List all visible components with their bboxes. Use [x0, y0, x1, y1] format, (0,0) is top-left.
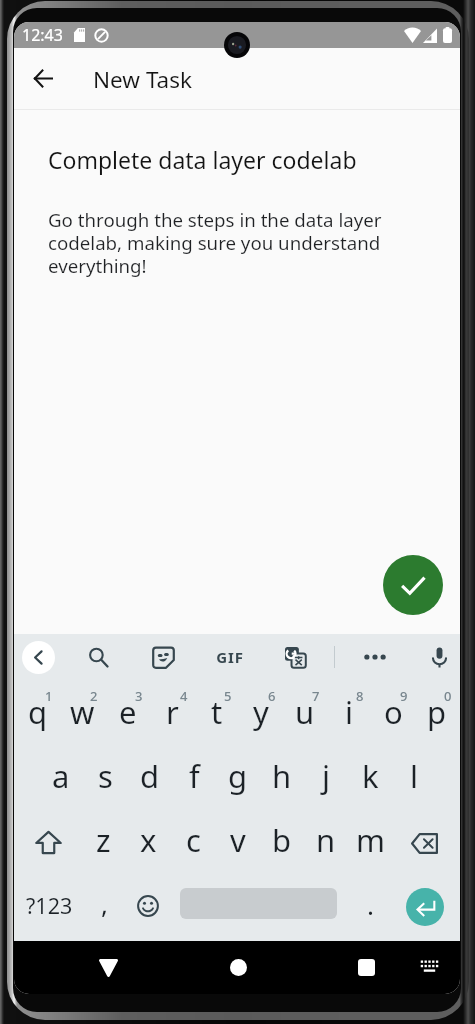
- staticText: 6: [268, 687, 276, 705]
- staticText: 1: [45, 687, 53, 705]
- staticText: o: [384, 691, 403, 733]
- button[interactable]: 8: [327, 676, 371, 740]
- staticText: .: [367, 887, 374, 922]
- button[interactable]: v: [216, 810, 260, 870]
- staticText: 7: [312, 687, 320, 705]
- button[interactable]: Navigate up: [21, 56, 65, 100]
- button[interactable]: n: [304, 810, 348, 870]
- button[interactable]: More options: [361, 643, 389, 671]
- button[interactable]: 4: [150, 676, 195, 740]
- staticText: n: [316, 819, 336, 861]
- staticText: ,: [101, 886, 108, 921]
- button[interactable]: z: [81, 810, 126, 870]
- button[interactable]: GIF: [212, 647, 248, 667]
- button[interactable]: c: [171, 810, 216, 870]
- button[interactable]: d: [128, 740, 172, 804]
- staticText: d: [140, 755, 160, 797]
- button[interactable]: m: [348, 810, 392, 870]
- button[interactable]: b: [260, 810, 304, 870]
- button[interactable]: k: [348, 740, 392, 804]
- button[interactable]: 2: [60, 676, 105, 740]
- button[interactable]: f: [172, 740, 216, 804]
- button[interactable]: 9: [371, 676, 415, 740]
- staticText: Complete data layer codelab: [48, 144, 357, 175]
- button[interactable]: 5: [195, 676, 239, 740]
- staticText: 5: [224, 687, 232, 705]
- button[interactable]: Translate: [281, 643, 309, 671]
- staticText: c: [186, 819, 201, 861]
- button[interactable]: Recent apps: [342, 943, 390, 991]
- button[interactable]: 0: [415, 676, 459, 740]
- staticText: q: [28, 691, 48, 733]
- staticText: 12:43: [22, 24, 63, 46]
- staticText: h: [272, 755, 292, 797]
- button[interactable]: Home: [214, 943, 262, 991]
- staticText: s: [98, 755, 113, 797]
- staticText: w: [70, 691, 95, 733]
- staticText: k: [362, 755, 379, 797]
- button[interactable]: l: [392, 740, 436, 804]
- button[interactable]: Backspace: [402, 813, 446, 873]
- button[interactable]: a: [38, 740, 83, 804]
- button[interactable]: x: [126, 810, 171, 870]
- staticText: 2: [90, 687, 98, 705]
- staticText: z: [96, 819, 111, 861]
- button[interactable]: ,: [84, 877, 124, 937]
- button[interactable]: Close toolbar: [22, 641, 55, 674]
- staticText: x: [140, 819, 157, 861]
- staticText: i: [345, 691, 353, 733]
- button[interactable]: Save task: [383, 555, 443, 615]
- staticText: Go through the steps in the data layer c…: [48, 207, 436, 279]
- staticText: l: [410, 755, 418, 797]
- staticText: j: [322, 755, 330, 797]
- staticText: 8: [356, 687, 364, 705]
- button[interactable]: Search: [84, 643, 112, 671]
- button[interactable]: ?123: [14, 875, 84, 935]
- staticText: 4: [180, 687, 188, 705]
- staticText: New Task: [93, 64, 193, 95]
- staticText: 9: [400, 687, 408, 705]
- button[interactable]: 6: [239, 676, 283, 740]
- button[interactable]: Enter: [406, 888, 444, 926]
- staticText: t: [211, 691, 223, 733]
- button[interactable]: h: [260, 740, 304, 804]
- staticText: b: [272, 819, 292, 861]
- staticText: e: [119, 691, 137, 733]
- button[interactable]: g: [216, 740, 260, 804]
- button[interactable]: 1: [15, 676, 60, 740]
- button[interactable]: Back: [84, 944, 132, 992]
- staticText: p: [427, 691, 447, 733]
- staticText: a: [52, 755, 70, 797]
- button[interactable]: s: [83, 740, 128, 804]
- button[interactable]: 3: [105, 676, 150, 740]
- button[interactable]: Voice input: [425, 643, 453, 671]
- staticText: v: [230, 819, 246, 861]
- button[interactable]: j: [304, 740, 348, 804]
- button[interactable]: Emoji: [126, 876, 170, 936]
- button[interactable]: .: [350, 877, 390, 937]
- button[interactable]: Stickers: [149, 643, 177, 671]
- staticText: u: [295, 691, 315, 733]
- staticText: ?123: [26, 891, 73, 920]
- button[interactable]: Shift: [26, 812, 70, 872]
- staticText: 3: [135, 687, 143, 705]
- staticText: m: [356, 819, 385, 861]
- staticText: 0: [444, 687, 452, 705]
- button[interactable]: Switch keyboard: [399, 940, 459, 993]
- staticText: g: [228, 755, 248, 797]
- staticText: r: [166, 691, 179, 733]
- staticText: f: [189, 755, 200, 797]
- button[interactable]: 7: [283, 676, 327, 740]
- staticText: y: [253, 691, 269, 733]
